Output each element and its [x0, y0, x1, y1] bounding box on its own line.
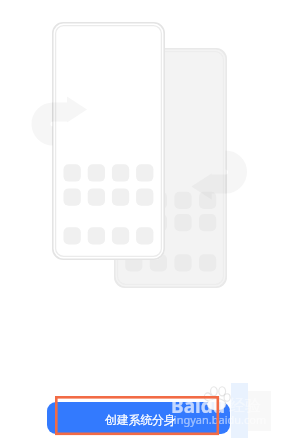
staticText: 经验 [229, 396, 261, 416]
button[interactable]: 创建系统分身 [47, 402, 230, 434]
staticText: 创建系统分身 [105, 413, 176, 428]
staticText: Baidu [171, 393, 226, 419]
staticText: jingyan.baidu.com [171, 412, 267, 427]
